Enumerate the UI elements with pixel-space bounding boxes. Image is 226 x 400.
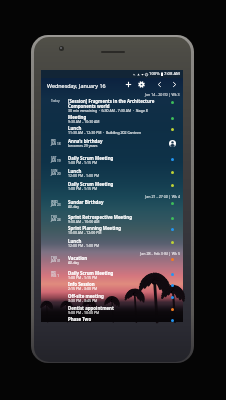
staticText: Dentist appointment (68, 305, 114, 311)
button[interactable]: Next week (170, 80, 179, 89)
button[interactable]: FRI (41, 138, 183, 149)
staticText: Jan 28 - Feb 3 (6) | Wk 5 (41, 251, 180, 256)
staticText: Lunch (68, 125, 82, 131)
staticText: JAN 19 (51, 159, 61, 163)
button[interactable]: Lunch (41, 238, 183, 249)
staticText: Meeting (68, 114, 87, 120)
button[interactable]: Settings (137, 80, 146, 89)
staticText: Phase Two (68, 316, 92, 322)
staticText: [Session] Fragments in the Architecture (68, 98, 155, 104)
staticText: JAN 24 (51, 218, 61, 222)
button[interactable]: Previous week (155, 80, 164, 89)
staticText: All-day (68, 260, 80, 265)
staticText: Daily Scrum Meeting (68, 155, 114, 161)
button[interactable]: THU (41, 255, 183, 266)
button[interactable]: SUN (41, 168, 183, 179)
staticText: 7:08 AM (164, 71, 180, 77)
staticText: 100% (149, 71, 160, 77)
staticText: All-day (68, 204, 80, 209)
staticText: JAN 23 (51, 203, 61, 207)
button[interactable]: Info Session (41, 281, 183, 292)
staticText: Lunch (68, 168, 82, 174)
staticText: 3:30 PM - 3:45 PM (68, 298, 98, 303)
staticText: 11:30 AM - 12:30 PM · Building 202 Cante… (68, 130, 142, 135)
staticText: WED (51, 200, 58, 204)
staticText: 30 min remaining · 6:30 AM - 7:30 AM · S… (68, 108, 148, 113)
staticText: THU (51, 256, 58, 260)
staticText: 1:00 PM - 1:15 PM (68, 160, 98, 165)
button[interactable]: THU (41, 214, 183, 225)
staticText: 9:30 AM - 10:30 AM (68, 119, 100, 124)
staticText: Off-site meeting (68, 293, 104, 299)
staticText: SAT (51, 156, 57, 160)
button[interactable]: WED (41, 199, 183, 210)
button[interactable]: Phase Two (41, 316, 183, 327)
staticText: Jan 14 - 20 (5) | Wk 3 (145, 92, 180, 97)
staticText: JAN 31 (51, 259, 61, 263)
staticText: SUN (51, 169, 58, 173)
staticText: FEB 1 (51, 274, 59, 278)
button[interactable]: Sprint Planning Meeting (41, 225, 183, 236)
staticText: Info Session (68, 281, 95, 287)
button[interactable]: Off-site meeting (41, 293, 183, 304)
staticText: Sprint Retrospective Meeting (68, 214, 132, 220)
staticText: Vacation (68, 255, 88, 261)
staticText: Today (51, 99, 60, 103)
staticText: FRI (51, 139, 56, 143)
staticText: Components world (68, 103, 110, 109)
staticText: Jan 21 - 27 (4) | Wk 4 (41, 194, 180, 199)
staticText: FRI (51, 271, 56, 275)
staticText: 12:00 PM - 1:00 PM (68, 243, 100, 248)
staticText: 9:00 AM - 10:00 AM (68, 219, 100, 224)
staticText: Sundar Birthday (68, 199, 104, 205)
staticText: 1:00 PM - 1:15 PM (68, 275, 98, 280)
staticText: 12:00 PM - 1:00 PM (68, 173, 100, 178)
button[interactable]: Daily Scrum Meeting (41, 181, 183, 192)
staticText: Daily Scrum Meeting (68, 270, 114, 276)
button[interactable]: Lunch (41, 125, 183, 136)
staticText: 1:00 PM - 1:15 PM (68, 186, 98, 191)
button[interactable]: Add event (124, 80, 133, 89)
staticText: Wednesday, January 16 (47, 82, 106, 89)
staticText: 2:15 PM - 3:00 PM (68, 286, 98, 291)
staticText: THU (51, 215, 58, 219)
button[interactable]: SAT (41, 155, 183, 166)
staticText: JAN 18 (51, 142, 61, 146)
staticText: Lunch (68, 238, 82, 244)
staticText: Sprint Planning Meeting (68, 225, 122, 231)
staticText: 9:00 PM - 10:00 PM (68, 310, 100, 315)
staticText: becomes 29 years (68, 143, 98, 148)
button[interactable]: FRI (41, 270, 183, 281)
staticText: Daily Scrum Meeting (68, 181, 114, 187)
button[interactable]: Meeting (41, 114, 183, 125)
button[interactable]: Dentist appointment (41, 305, 183, 316)
button[interactable]: Today (41, 98, 183, 112)
staticText: Anna's birthday (68, 138, 103, 144)
staticText: JAN 20 (51, 172, 61, 176)
staticText: 10:00 AM - 12:00 PM (68, 230, 102, 235)
